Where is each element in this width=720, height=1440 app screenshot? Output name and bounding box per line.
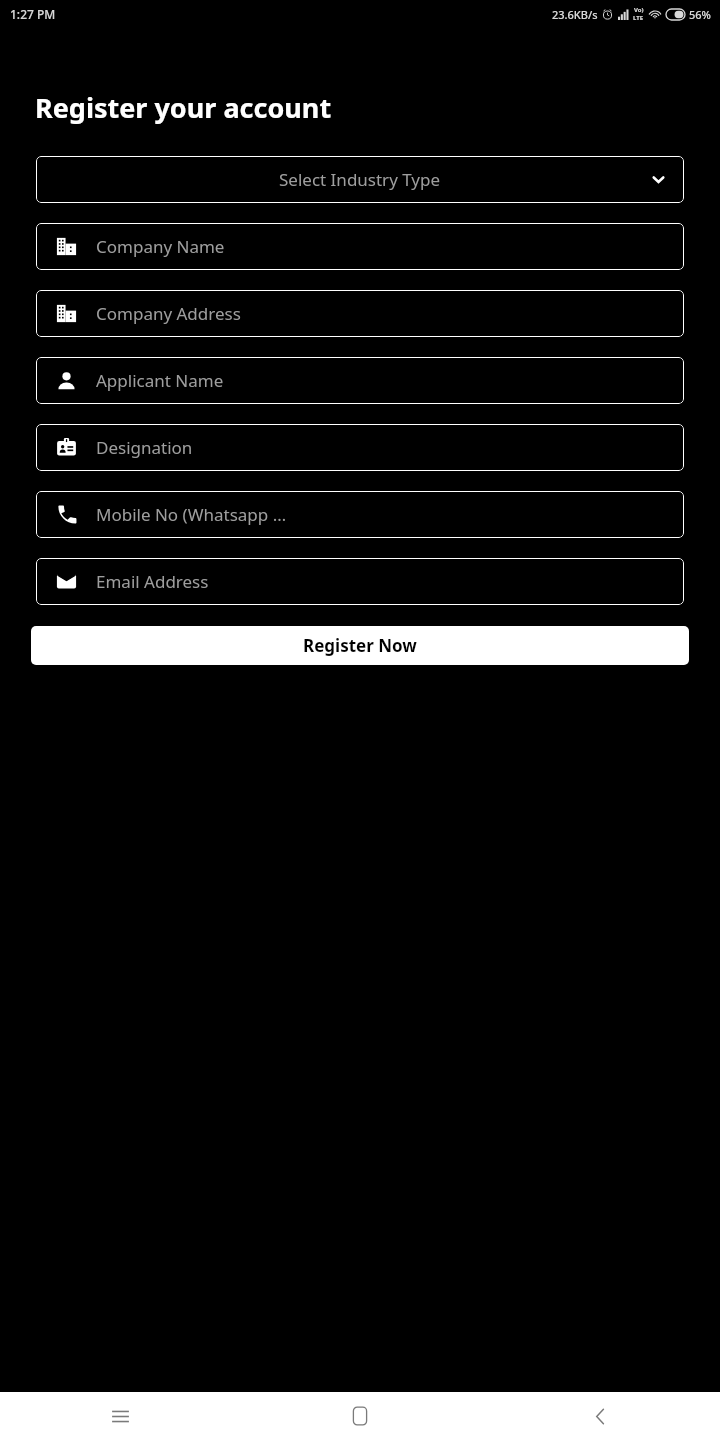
button[interactable]: Email Address — [36, 558, 684, 605]
staticText: Register your account — [35, 89, 332, 126]
button[interactable]: Home — [240, 1392, 480, 1440]
button[interactable]: Company Address — [36, 290, 684, 337]
staticText: 23.6KB/s — [552, 7, 598, 22]
staticText: Vo) — [634, 6, 644, 14]
staticText: Designation — [96, 436, 193, 459]
staticText: Applicant Name — [96, 369, 224, 392]
button[interactable]: Back — [480, 1392, 720, 1440]
staticText: Register Now — [303, 634, 417, 657]
button[interactable]: Register Now — [31, 626, 689, 665]
staticText: Email Address — [96, 570, 209, 593]
staticText: Company Name — [96, 235, 225, 258]
button[interactable]: Company Name — [36, 223, 684, 270]
button[interactable]: Select Industry Type — [36, 156, 684, 203]
button[interactable]: Mobile No (Whatsapp … — [36, 491, 684, 538]
staticText: Company Address — [96, 302, 241, 325]
button[interactable]: Recent apps — [0, 1392, 240, 1440]
staticText: Mobile No (Whatsapp … — [96, 503, 287, 526]
staticText: Select Industry Type — [279, 168, 441, 191]
staticText: LTE — [633, 14, 644, 22]
staticText: 56% — [689, 7, 711, 22]
button[interactable]: Designation — [36, 424, 684, 471]
staticText: 1:27 PM — [10, 6, 56, 22]
button[interactable]: Applicant Name — [36, 357, 684, 404]
